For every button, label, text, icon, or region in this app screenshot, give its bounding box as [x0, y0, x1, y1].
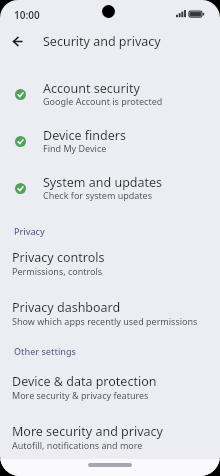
- staticText: 10:00: [14, 8, 40, 22]
- button[interactable]: [88, 463, 132, 467]
- staticText: Other settings: [14, 345, 76, 357]
- button[interactable]: Device finders: [0, 118, 220, 165]
- button[interactable]: System and updates: [0, 165, 220, 212]
- staticText: Privacy controls: [12, 249, 105, 266]
- button[interactable]: More security and privacy: [0, 412, 220, 462]
- staticText: More security and privacy: [12, 423, 163, 440]
- button[interactable]: [5, 29, 29, 53]
- staticText: Show which apps recently used permission…: [12, 315, 198, 327]
- staticText: Device finders: [43, 127, 126, 144]
- staticText: Account security: [43, 80, 140, 97]
- button[interactable]: Device & data protection: [0, 362, 220, 412]
- staticText: Autofill, notifications and more: [12, 439, 143, 451]
- staticText: Check for system updates: [43, 189, 152, 201]
- button[interactable]: Account security: [0, 71, 220, 118]
- staticText: More security & privacy features: [12, 389, 149, 401]
- staticText: Privacy: [14, 225, 45, 237]
- staticText: Permissions, controls: [12, 265, 103, 277]
- staticText: Privacy dashboard: [12, 299, 121, 316]
- button[interactable]: Privacy controls: [0, 238, 220, 288]
- staticText: Device & data protection: [12, 373, 157, 390]
- staticText: Security and privacy: [43, 33, 161, 50]
- button[interactable]: Privacy dashboard: [0, 288, 220, 338]
- staticText: Find My Device: [43, 142, 107, 154]
- staticText: Google Account is protected: [43, 95, 163, 107]
- staticText: System and updates: [43, 174, 163, 191]
